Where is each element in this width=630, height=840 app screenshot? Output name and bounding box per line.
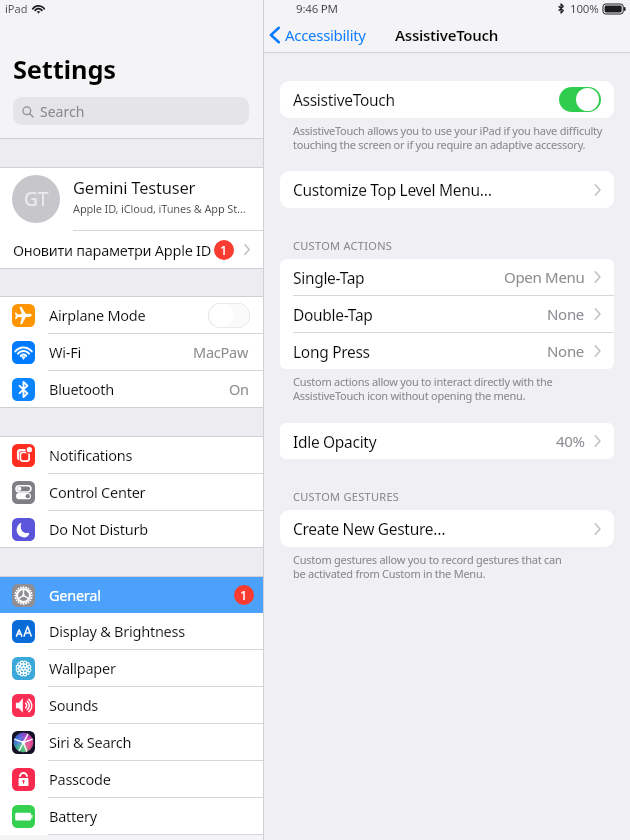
- staticText: Single-Tap: [293, 267, 365, 288]
- staticText: 40%: [556, 431, 585, 451]
- button[interactable]: General: [0, 577, 263, 613]
- staticText: iPad: [5, 1, 28, 16]
- staticText: Battery: [49, 806, 97, 826]
- staticText: Create New Gesture…: [293, 518, 446, 539]
- staticText: Control Center: [49, 482, 146, 502]
- staticText: None: [547, 304, 585, 324]
- button[interactable]: Customize Top Level Menu…: [280, 171, 614, 208]
- staticText: Оновити параметри Apple ID: [13, 240, 212, 260]
- staticText: Display & Brightness: [49, 621, 185, 641]
- staticText: Long Press: [293, 341, 370, 362]
- staticText: 1: [220, 241, 228, 259]
- staticText: Custom gestures allow you to record gest…: [293, 552, 574, 582]
- button[interactable]: Airplane Mode: [0, 297, 263, 333]
- staticText: General: [49, 585, 101, 605]
- staticText: Accessibility: [285, 25, 366, 45]
- button[interactable]: Wallpaper: [0, 650, 263, 686]
- staticText: Bluetooth: [49, 379, 115, 399]
- button[interactable]: Double-Tap: [280, 296, 614, 332]
- staticText: Custom actions allow you to interact dir…: [293, 374, 559, 404]
- staticText: Double-Tap: [293, 304, 373, 325]
- staticText: AssistiveTouch allows you to use your iP…: [293, 123, 614, 153]
- staticText: Sounds: [49, 695, 99, 715]
- staticText: Do Not Disturb: [49, 519, 148, 539]
- staticText: None: [547, 341, 585, 361]
- staticText: Notifications: [49, 445, 133, 465]
- staticText: Passcode: [49, 769, 111, 789]
- staticText: Settings: [13, 52, 116, 87]
- button[interactable]: Control Center: [0, 474, 263, 510]
- button[interactable]: GT: [0, 168, 263, 230]
- staticText: MacPaw: [193, 342, 249, 362]
- staticText: 9:46 PM: [296, 1, 338, 17]
- staticText: Search: [40, 102, 85, 121]
- button[interactable]: Back to Accessibility: [269, 17, 366, 52]
- staticText: 100%: [570, 1, 599, 17]
- staticText: GT: [24, 186, 49, 212]
- staticText: Wallpaper: [49, 658, 116, 678]
- button[interactable]: Battery: [0, 798, 263, 834]
- button[interactable]: Single-Tap: [280, 259, 614, 295]
- staticText: CUSTOM ACTIONS: [293, 238, 393, 253]
- staticText: Gemini Testuser: [73, 176, 196, 198]
- button[interactable]: Оновити параметри Apple ID: [0, 231, 263, 268]
- button[interactable]: Search settings: [13, 97, 249, 125]
- staticText: Airplane Mode: [49, 305, 146, 325]
- button[interactable]: Notifications: [0, 437, 263, 473]
- button[interactable]: Display & Brightness: [0, 613, 263, 649]
- button[interactable]: Sounds: [0, 687, 263, 723]
- button[interactable]: Long Press: [280, 333, 614, 369]
- button[interactable]: Idle Opacity: [280, 423, 614, 459]
- button[interactable]: AssistiveTouch: [280, 81, 614, 118]
- staticText: Wi-Fi: [49, 342, 81, 362]
- button[interactable]: Toggle on: [559, 87, 601, 112]
- staticText: 1: [240, 586, 248, 604]
- staticText: AssistiveTouch: [395, 25, 499, 45]
- staticText: Siri & Search: [49, 732, 132, 752]
- staticText: CUSTOM GESTURES: [293, 489, 400, 504]
- button[interactable]: Bluetooth: [0, 371, 263, 407]
- staticText: Apple ID, iCloud, iTunes & App St…: [73, 201, 246, 216]
- staticText: Idle Opacity: [293, 431, 377, 452]
- button[interactable]: Do Not Disturb: [0, 511, 263, 547]
- button[interactable]: Create New Gesture…: [280, 510, 614, 547]
- button[interactable]: Siri & Search: [0, 724, 263, 760]
- staticText: Open Menu: [504, 267, 585, 287]
- staticText: On: [229, 379, 249, 399]
- button[interactable]: Toggle off: [208, 303, 250, 328]
- staticText: Customize Top Level Menu…: [293, 179, 492, 200]
- button[interactable]: Wi-Fi: [0, 334, 263, 370]
- staticText: AssistiveTouch: [293, 89, 395, 110]
- button[interactable]: Passcode: [0, 761, 263, 797]
